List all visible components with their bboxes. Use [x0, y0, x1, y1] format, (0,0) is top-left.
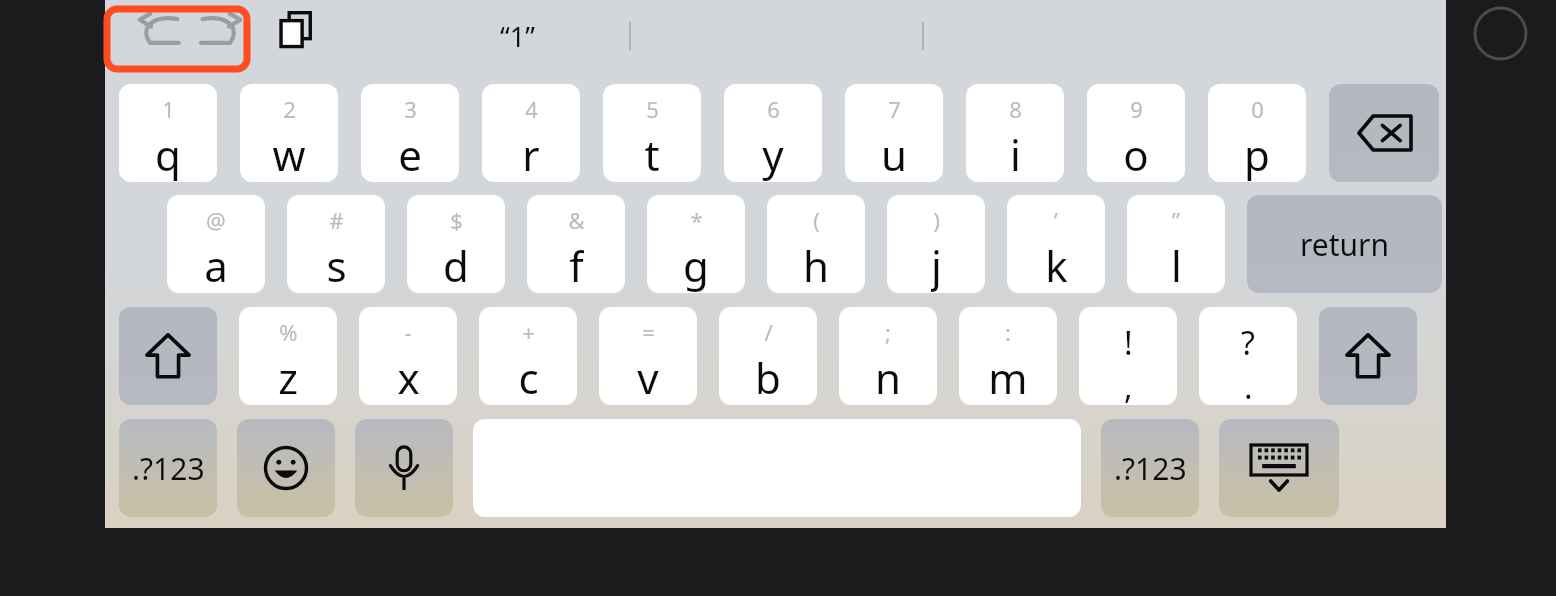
button[interactable]: Undo	[129, 0, 189, 60]
button[interactable]: Hide keyboard	[1219, 419, 1339, 517]
staticText: p	[1244, 126, 1270, 182]
button[interactable]: !	[1079, 307, 1177, 405]
button[interactable]: +	[479, 307, 577, 405]
button[interactable]: 3	[361, 84, 459, 182]
button[interactable]: #	[287, 195, 385, 293]
button[interactable]: 5	[603, 84, 701, 182]
staticText: 2	[283, 94, 296, 124]
button[interactable]: 4	[482, 84, 580, 182]
staticText: 1	[162, 94, 175, 124]
staticText: e	[398, 126, 422, 182]
staticText: !	[1124, 321, 1133, 365]
button[interactable]: &	[527, 195, 625, 293]
staticText: 5	[646, 94, 659, 124]
staticText: t	[644, 126, 660, 182]
button[interactable]: Redo	[191, 0, 251, 60]
staticText: .?123	[132, 448, 205, 489]
button[interactable]: ’	[1007, 195, 1105, 293]
button[interactable]: /	[719, 307, 817, 405]
staticText: j	[931, 237, 942, 293]
staticText: m	[988, 349, 1028, 405]
staticText: *	[690, 205, 703, 235]
staticText: 6	[767, 94, 780, 124]
staticText: i	[1010, 126, 1021, 182]
button[interactable]: Paste	[267, 0, 325, 60]
staticText: f	[569, 237, 584, 293]
staticText: 9	[1130, 94, 1143, 124]
staticText: g	[683, 237, 709, 293]
staticText: q	[155, 126, 181, 182]
staticText: ,	[1124, 365, 1133, 405]
button[interactable]: @	[167, 195, 265, 293]
button[interactable]: 2	[240, 84, 338, 182]
staticText: 4	[525, 94, 538, 124]
button[interactable]: Emoji	[237, 419, 335, 517]
button[interactable]: Delete	[1329, 84, 1439, 182]
staticText: %	[279, 317, 298, 347]
staticText: z	[278, 349, 298, 405]
staticText: ?	[1241, 321, 1255, 365]
staticText: -	[404, 317, 412, 347]
staticText: &	[568, 205, 585, 235]
button[interactable]: Shift	[119, 307, 217, 405]
staticText: 8	[1009, 94, 1022, 124]
staticText: y	[762, 126, 784, 182]
staticText: o	[1123, 126, 1149, 182]
button[interactable]: *	[647, 195, 745, 293]
staticText: :	[1005, 317, 1011, 347]
staticText: u	[881, 126, 907, 182]
button[interactable]: return	[1247, 195, 1442, 293]
staticText: =	[642, 317, 655, 347]
button[interactable]: .?123	[1101, 419, 1199, 517]
button[interactable]: $	[407, 195, 505, 293]
staticText: )	[933, 205, 940, 235]
button[interactable]: )	[887, 195, 985, 293]
staticText: +	[522, 317, 535, 347]
button[interactable]: 0	[1208, 84, 1306, 182]
staticText: ’	[1054, 205, 1058, 235]
button[interactable]: :	[959, 307, 1057, 405]
staticText: d	[443, 237, 469, 293]
staticText: (	[813, 205, 820, 235]
staticText: “1”	[500, 18, 535, 55]
staticText: ”	[1172, 205, 1180, 235]
button[interactable]: =	[599, 307, 697, 405]
staticText: k	[1045, 237, 1068, 293]
button[interactable]: ;	[839, 307, 937, 405]
staticText: c	[518, 349, 539, 405]
button[interactable]: 9	[1087, 84, 1185, 182]
staticText: w	[272, 126, 306, 182]
button[interactable]: 1	[119, 84, 217, 182]
staticText: ;	[885, 317, 891, 347]
staticText: v	[637, 349, 659, 405]
button[interactable]: Shift	[1319, 307, 1417, 405]
button[interactable]: ”	[1127, 195, 1225, 293]
button[interactable]: 6	[724, 84, 822, 182]
staticText: r	[522, 126, 540, 182]
staticText: n	[875, 349, 901, 405]
button[interactable]: “1”	[405, 0, 630, 72]
button[interactable]: .?123	[119, 419, 217, 517]
button[interactable]: 8	[966, 84, 1064, 182]
staticText: 3	[404, 94, 417, 124]
button[interactable]: 7	[845, 84, 943, 182]
staticText: 7	[888, 94, 901, 124]
staticText: .	[1244, 365, 1253, 405]
staticText: /	[764, 317, 773, 347]
staticText: h	[803, 237, 829, 293]
button[interactable]: (	[767, 195, 865, 293]
staticText: #	[329, 205, 344, 235]
staticText: return	[1300, 224, 1390, 265]
button[interactable]: ?	[1199, 307, 1297, 405]
staticText: l	[1171, 237, 1182, 293]
staticText: .?123	[1114, 448, 1187, 489]
button[interactable]: -	[359, 307, 457, 405]
staticText: s	[326, 237, 347, 293]
staticText: $	[450, 205, 463, 235]
button[interactable]: Dictation	[355, 419, 453, 517]
button[interactable]: %	[239, 307, 337, 405]
staticText: @	[206, 205, 226, 235]
